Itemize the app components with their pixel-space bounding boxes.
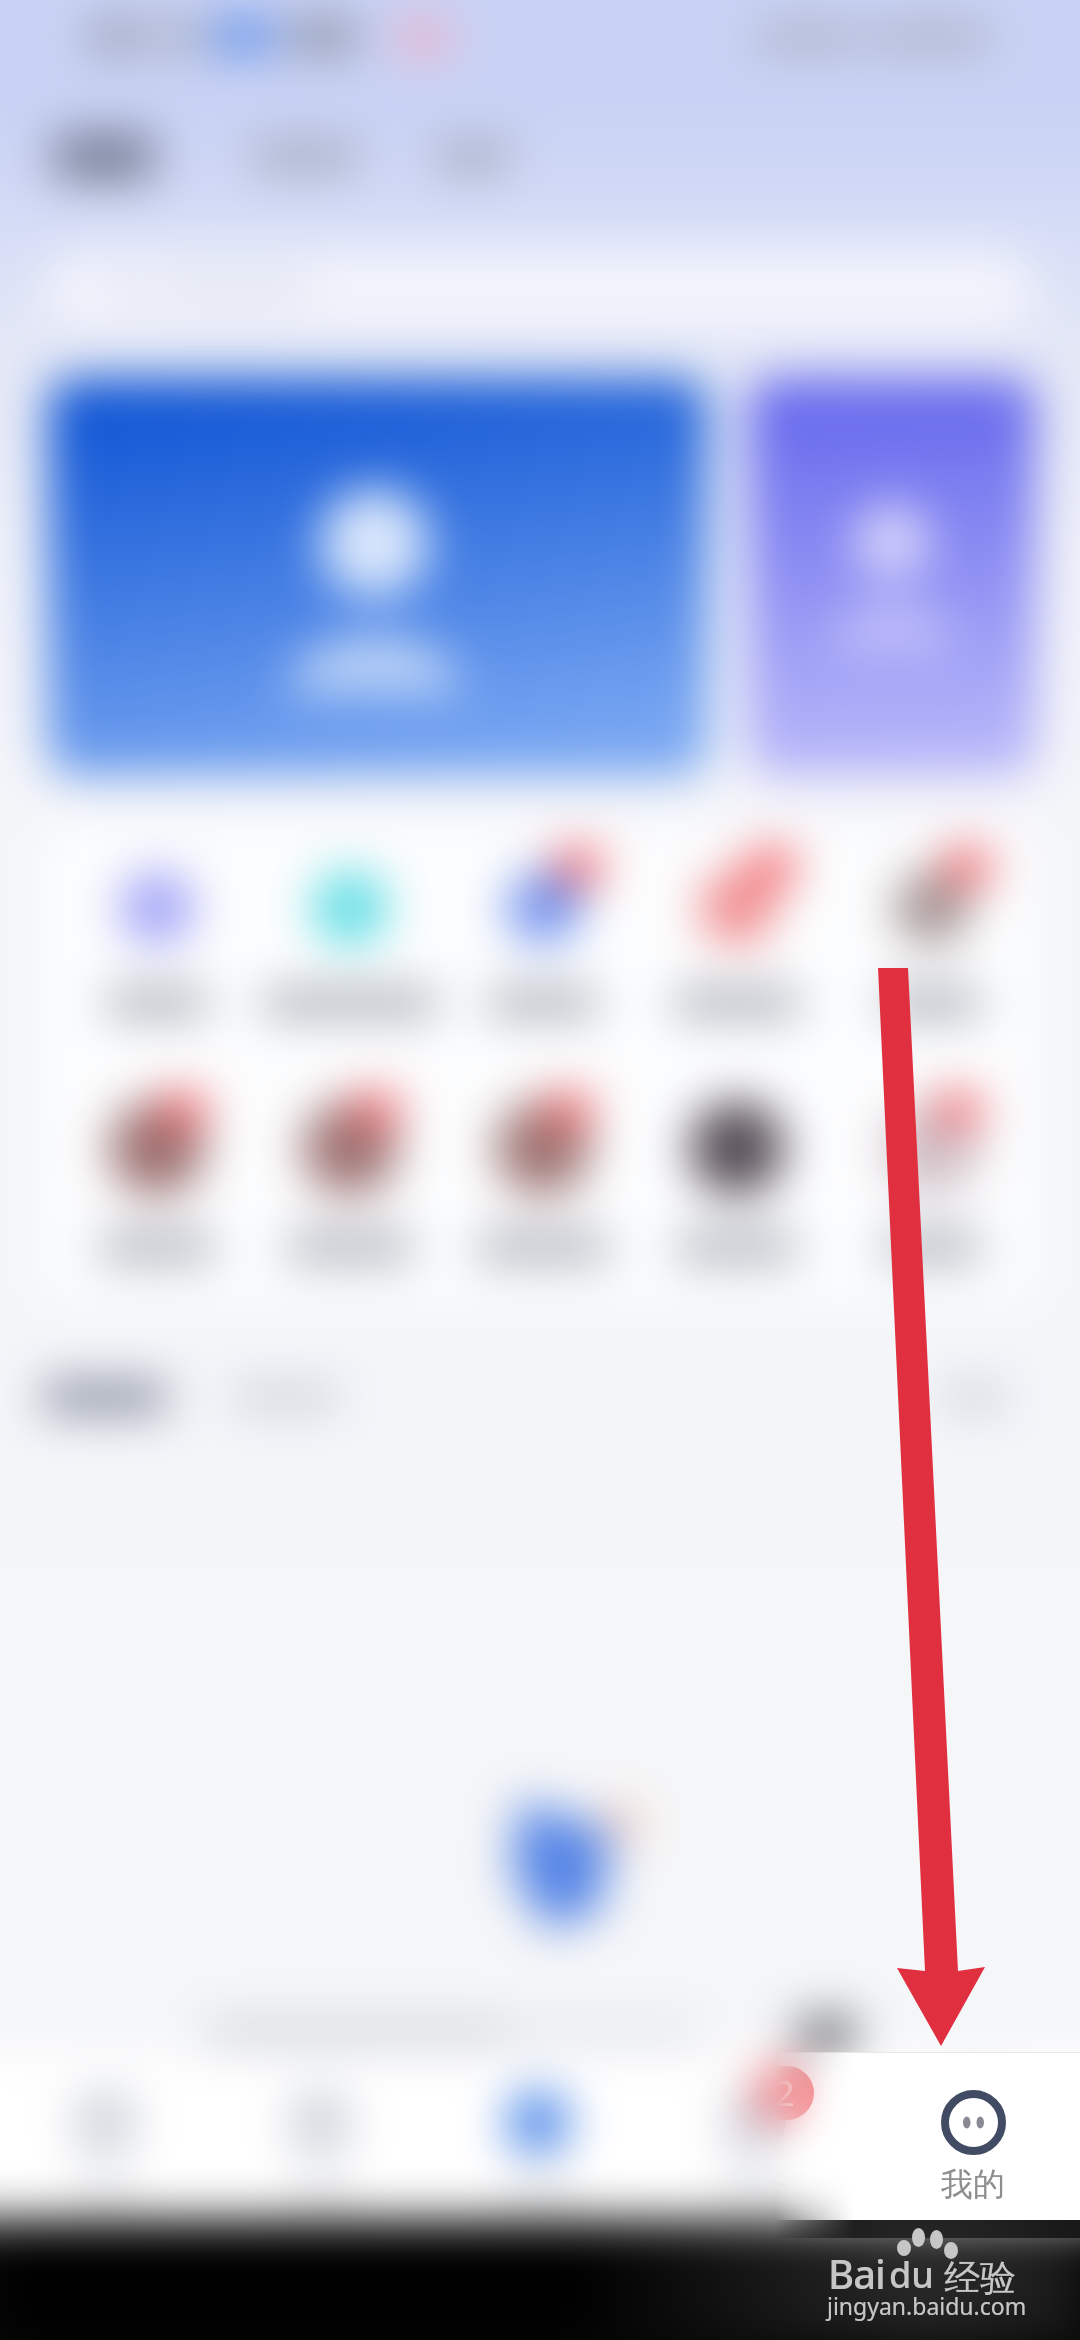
staticText: 2: [775, 2070, 795, 2116]
button[interactable]: 首页: [0, 2053, 212, 2220]
staticText: du: [889, 2250, 934, 2299]
staticText: 消息: [288, 2164, 352, 2204]
staticText: 2: [775, 2070, 795, 2116]
staticText: 首页: [73, 2164, 137, 2204]
staticText: 服务: [723, 2164, 787, 2204]
staticText: Bai: [828, 2246, 885, 2300]
staticText: 发现: [506, 2164, 570, 2204]
staticText: 我的: [941, 2164, 1005, 2204]
button[interactable]: 消息: [213, 2053, 427, 2220]
button[interactable]: 我的: [866, 2053, 1080, 2220]
button[interactable]: 我的: [866, 2053, 1080, 2220]
staticText: 经验: [944, 2255, 1016, 2300]
button[interactable]: 发现: [431, 2053, 645, 2220]
staticText: 我的: [941, 2164, 1005, 2204]
button[interactable]: 服务: [775, 2053, 862, 2220]
staticText: 服务: [775, 2164, 787, 2204]
staticText: jingyan.baidu.com: [827, 2290, 1027, 2321]
button[interactable]: 服务: [648, 2053, 862, 2220]
